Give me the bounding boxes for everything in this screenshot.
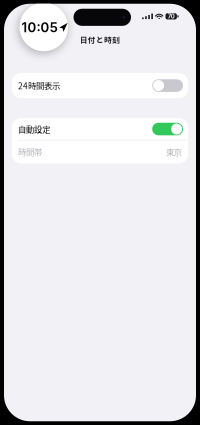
staticText: 70 [168,13,175,20]
staticText: 自動設定 [18,123,50,135]
button[interactable]: 24時間表示 [12,73,188,98]
button[interactable]: 時間帯 [12,140,188,163]
staticText: 日付と時刻 [80,34,120,45]
button[interactable]: 自動設定 [12,118,188,140]
staticText: 東京 [166,146,182,158]
staticText: 時間帯 [18,146,42,158]
staticText: 10:05 [22,19,58,35]
staticText: 24時間表示 [18,79,60,92]
